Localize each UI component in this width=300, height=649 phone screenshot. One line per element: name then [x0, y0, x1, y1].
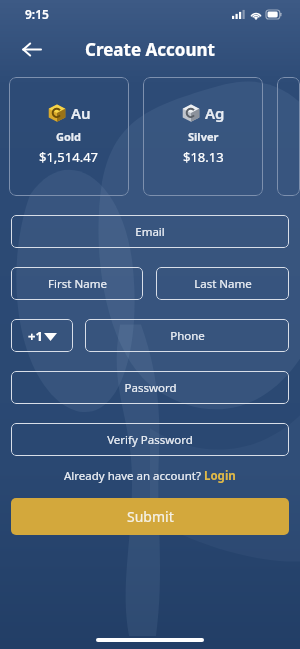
staticText: Phone	[170, 328, 205, 344]
staticText: Submit	[127, 507, 174, 526]
staticText: Login	[204, 468, 236, 484]
staticText: Au	[71, 103, 91, 123]
button[interactable]	[277, 77, 300, 196]
button[interactable]: Submit	[11, 498, 289, 535]
button[interactable]: Last Name	[156, 267, 289, 300]
staticText: Silver	[188, 129, 219, 144]
staticText: $18.13	[183, 148, 224, 166]
button[interactable]: First Name	[11, 267, 143, 300]
button[interactable]: Password	[11, 371, 289, 404]
staticText: Create Account	[85, 38, 215, 61]
button[interactable]: Email	[11, 215, 289, 248]
staticText: 9:15	[25, 6, 49, 22]
staticText: Email	[135, 224, 165, 240]
button[interactable]: Login	[204, 468, 236, 484]
staticText: Last Name	[194, 276, 252, 292]
staticText: Already have an account?	[64, 468, 204, 484]
staticText: +1	[28, 327, 43, 345]
staticText: First Name	[48, 276, 107, 292]
button[interactable]: Country code +1	[11, 319, 73, 352]
staticText: $1,514.47	[39, 148, 99, 166]
button[interactable]: Au	[9, 77, 129, 196]
staticText: Ag	[205, 103, 225, 123]
button[interactable]: Verify Password	[11, 423, 289, 456]
button[interactable]: Phone	[85, 319, 289, 352]
button[interactable]: Back	[14, 32, 48, 66]
staticText: Password	[124, 380, 177, 396]
staticText: Gold	[56, 129, 82, 144]
button[interactable]: Ag	[143, 77, 263, 196]
staticText: Verify Password	[107, 432, 193, 448]
